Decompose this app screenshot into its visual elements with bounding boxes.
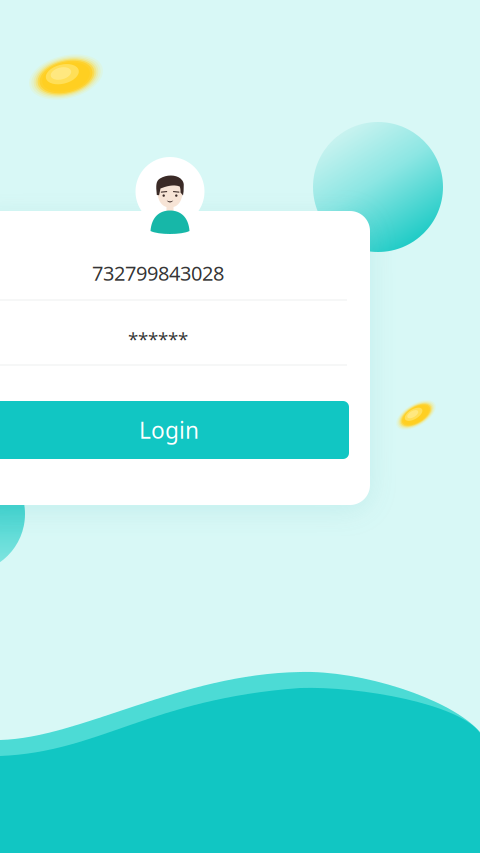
button[interactable]: Account number, 732799843028: [0, 241, 347, 305]
staticText: Login: [139, 415, 199, 445]
button[interactable]: Login: [0, 401, 349, 459]
staticText: 732799843028: [92, 260, 224, 286]
button[interactable]: Password: [0, 308, 347, 370]
staticText: ******: [128, 327, 188, 351]
